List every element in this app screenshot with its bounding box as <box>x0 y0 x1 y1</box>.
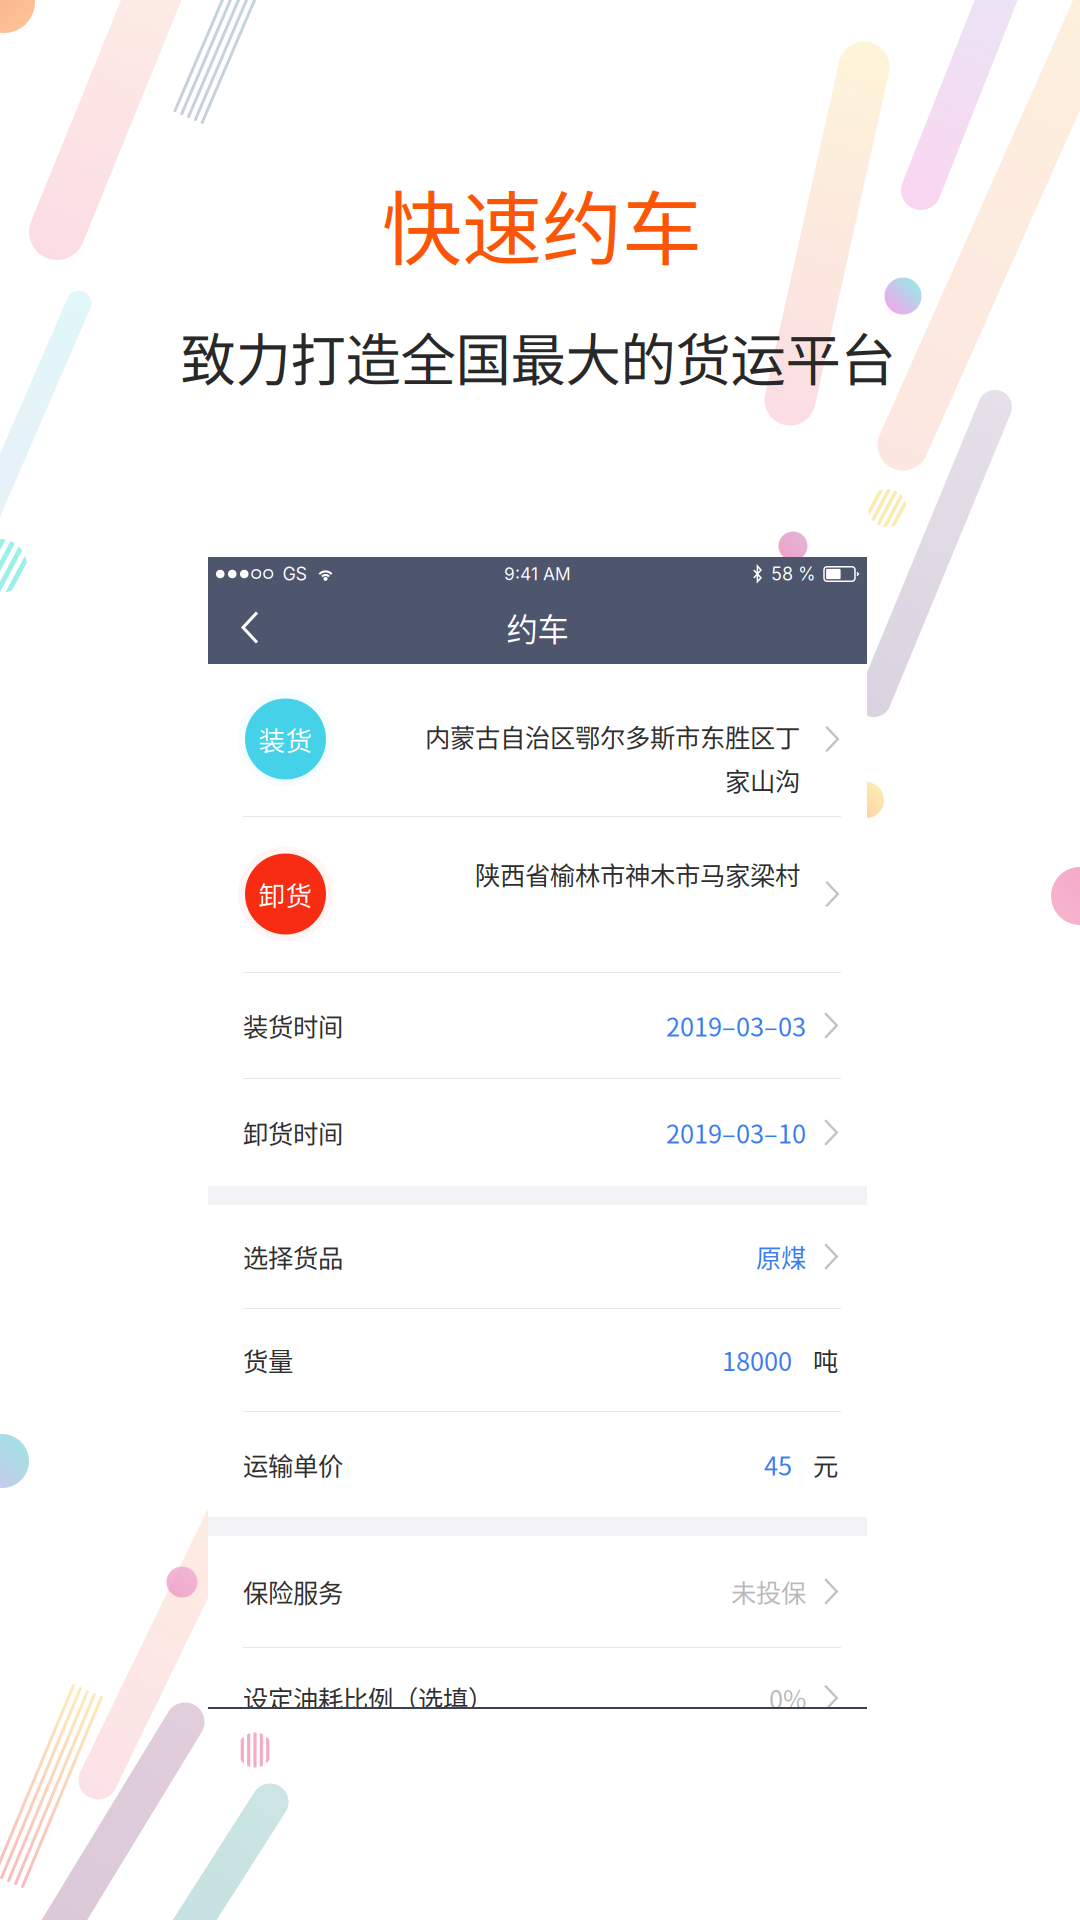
staticText: 约车 <box>506 605 568 650</box>
staticText: 卸货时间 <box>243 1114 343 1151</box>
button[interactable]: 保险服务 <box>208 1536 867 1647</box>
button[interactable]: 装货 <box>208 664 867 816</box>
staticText: 设定油耗比例（选填） <box>243 1680 493 1716</box>
staticText: 45 <box>764 1446 792 1483</box>
staticText: GS <box>282 563 307 585</box>
staticText: 选择货品 <box>243 1238 343 1275</box>
staticText: 致力打造全国最大的货运平台 <box>180 316 895 396</box>
staticText: 2019–03–03 <box>666 1007 806 1044</box>
staticText: 58 % <box>771 563 816 585</box>
staticText: 9:41 AM <box>504 563 571 584</box>
staticText: 装货 <box>258 720 312 758</box>
button[interactable]: 返回 <box>208 591 292 664</box>
staticText: 保险服务 <box>243 1573 343 1610</box>
staticText: 货量 <box>243 1342 293 1378</box>
button[interactable]: 卸货时间 <box>208 1079 867 1186</box>
staticText: 快速约车 <box>382 165 702 281</box>
button[interactable]: 运输单价 <box>208 1412 867 1517</box>
button[interactable]: 货量 <box>208 1309 867 1411</box>
staticText: 装货时间 <box>243 1007 343 1044</box>
staticText: 原煤 <box>756 1238 806 1275</box>
staticText: 0% <box>769 1680 806 1716</box>
button[interactable]: 装货时间 <box>208 973 867 1078</box>
button[interactable]: 选择货品 <box>208 1205 867 1308</box>
button[interactable]: 设定油耗比例（选填） <box>208 1648 867 1748</box>
staticText: 未投保 <box>731 1573 806 1610</box>
staticText: 陕西省榆林市神木市马家梁村 <box>475 856 800 892</box>
staticText: 吨 <box>813 1342 838 1378</box>
staticText: 运输单价 <box>243 1446 343 1483</box>
staticText: 家山沟 <box>725 761 800 798</box>
staticText: 18000 <box>722 1342 792 1378</box>
staticText: 卸货 <box>258 875 312 913</box>
staticText: 元 <box>813 1446 838 1483</box>
staticText: 2019–03–10 <box>666 1114 806 1151</box>
staticText: 内蒙古自治区鄂尔多斯市东胜区丁 <box>425 718 800 754</box>
button[interactable]: 卸货 <box>208 817 867 972</box>
